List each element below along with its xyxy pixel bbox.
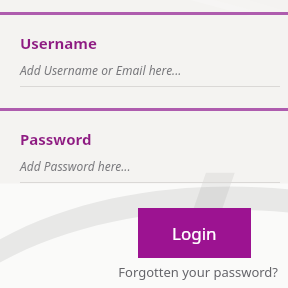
staticText: Add Username or Email here...	[20, 62, 182, 78]
button[interactable]: Forgotten your password?	[116, 261, 280, 283]
staticText: Login	[172, 222, 217, 245]
staticText: Password	[20, 129, 92, 149]
button[interactable]: Password	[0, 111, 288, 183]
staticText: Add Password here...	[20, 158, 131, 174]
button[interactable]: Login	[138, 208, 251, 258]
button[interactable]: Username	[0, 15, 288, 87]
staticText: Forgotten your password?	[118, 263, 278, 281]
staticText: Username	[20, 33, 97, 53]
